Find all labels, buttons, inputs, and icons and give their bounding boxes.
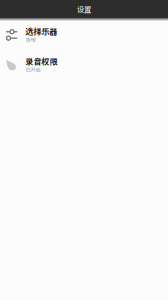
button[interactable]: 录音权限: [0, 51, 168, 81]
staticText: 选择乐器: [25, 25, 57, 37]
staticText: 录音权限: [25, 55, 57, 67]
staticText: 设置: [77, 4, 91, 14]
staticText: 吉他: [25, 36, 35, 43]
button[interactable]: 选择乐器: [0, 21, 168, 51]
staticText: 已开启: [25, 66, 40, 73]
